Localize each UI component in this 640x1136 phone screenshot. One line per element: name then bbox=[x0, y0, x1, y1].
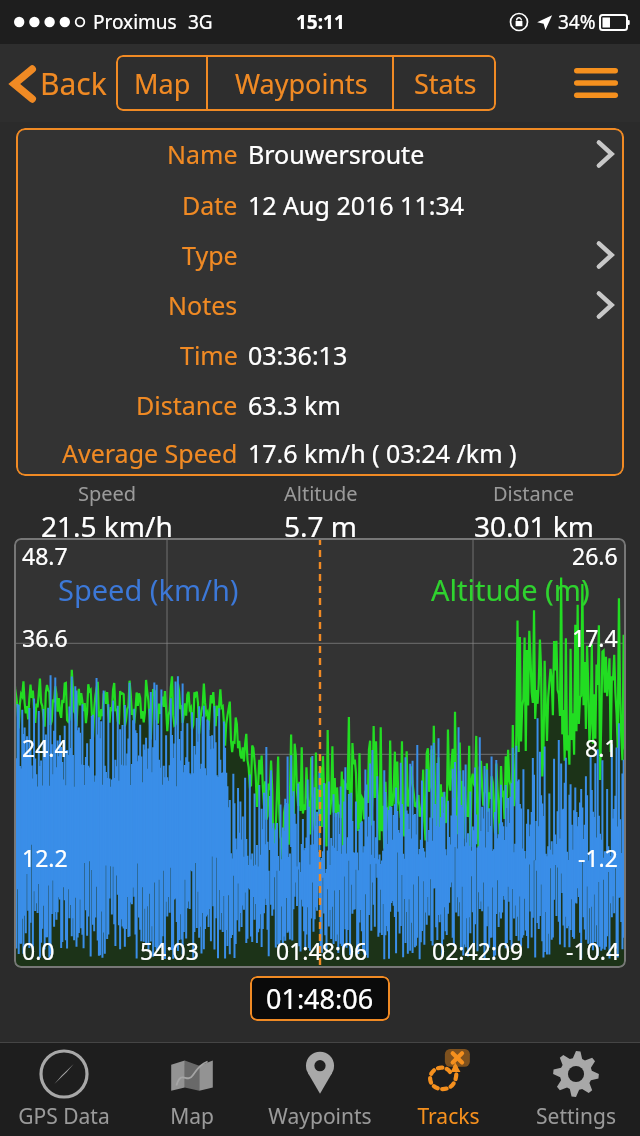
button[interactable]: Time bbox=[16, 330, 624, 380]
staticText: Name bbox=[167, 137, 238, 171]
staticText: Distance bbox=[493, 480, 575, 507]
staticText: 8.1 bbox=[585, 732, 618, 763]
staticText: Back bbox=[40, 63, 107, 104]
button[interactable]: Waypoints bbox=[208, 55, 394, 111]
staticText: 34% bbox=[558, 9, 596, 35]
staticText: 30.01 km bbox=[474, 507, 594, 538]
staticText: Map bbox=[134, 65, 191, 102]
staticText: Tracks bbox=[417, 1102, 480, 1131]
staticText: Map bbox=[170, 1102, 214, 1131]
staticText: Average Speed bbox=[62, 436, 238, 470]
staticText: 36.6 bbox=[22, 622, 68, 653]
staticText: Waypoints bbox=[235, 65, 368, 102]
button[interactable]: Map bbox=[116, 55, 208, 111]
button[interactable]: Date bbox=[16, 180, 624, 230]
staticText: 02:42:09 bbox=[432, 935, 524, 966]
button[interactable]: Distance bbox=[16, 380, 624, 430]
button[interactable]: 48.7 bbox=[14, 538, 626, 968]
staticText: 12.2 bbox=[22, 842, 68, 873]
staticText: 48.7 bbox=[22, 540, 68, 571]
staticText: 17.4 bbox=[572, 622, 618, 653]
button[interactable]: Average Speed bbox=[16, 430, 624, 476]
staticText: 15:11 bbox=[296, 9, 345, 35]
staticText: Speed bbox=[78, 480, 137, 507]
button[interactable]: 01:48:06 bbox=[266, 980, 374, 1017]
staticText: Notes bbox=[168, 288, 238, 322]
staticText: -10.4 bbox=[566, 935, 620, 966]
staticText: 21.5 km/h bbox=[41, 507, 173, 538]
staticText: Settings bbox=[536, 1102, 616, 1131]
button[interactable]: Waypoints bbox=[256, 1043, 384, 1136]
staticText: Speed (km/h) bbox=[58, 570, 239, 609]
staticText: Proximus bbox=[93, 9, 177, 35]
staticText: Time bbox=[180, 338, 238, 372]
button[interactable]: Back bbox=[12, 63, 107, 104]
staticText: GPS Data bbox=[18, 1102, 110, 1131]
staticText: 26.6 bbox=[572, 540, 618, 571]
staticText: 24.4 bbox=[22, 732, 68, 763]
staticText: Waypoints bbox=[268, 1102, 372, 1131]
button[interactable]: Stats bbox=[394, 55, 496, 111]
button[interactable]: Map bbox=[128, 1043, 256, 1136]
staticText: 63.3 km bbox=[248, 388, 341, 422]
staticText: 01:48:06 bbox=[276, 935, 368, 966]
staticText: Brouwersroute bbox=[248, 137, 425, 171]
button[interactable]: Notes bbox=[16, 280, 624, 330]
button[interactable]: Type bbox=[16, 230, 624, 280]
button[interactable]: Tracks bbox=[384, 1043, 512, 1136]
staticText: 12 Aug 2016 11:34 bbox=[248, 188, 465, 222]
staticText: 3G bbox=[188, 9, 213, 35]
staticText: Type bbox=[182, 238, 238, 272]
button[interactable]: Name bbox=[16, 128, 624, 180]
staticText: Distance bbox=[136, 388, 238, 422]
staticText: -1.2 bbox=[578, 842, 618, 873]
staticText: 5.7 m bbox=[284, 507, 357, 538]
button[interactable]: Settings bbox=[512, 1043, 640, 1136]
staticText: 03:36:13 bbox=[248, 338, 348, 372]
staticText: Stats bbox=[414, 65, 477, 102]
button[interactable]: GPS Data bbox=[0, 1043, 128, 1136]
staticText: 01:48:06 bbox=[266, 980, 374, 1017]
staticText: Date bbox=[182, 188, 238, 222]
staticText: 0.0 bbox=[22, 935, 55, 966]
button[interactable]: Menu bbox=[568, 55, 624, 111]
staticText: Altitude bbox=[284, 480, 358, 507]
staticText: 17.6 km/h ( 03:24 /km ) bbox=[248, 436, 517, 470]
staticText: Altitude (m) bbox=[431, 570, 590, 609]
staticText: 54:03 bbox=[140, 935, 199, 966]
